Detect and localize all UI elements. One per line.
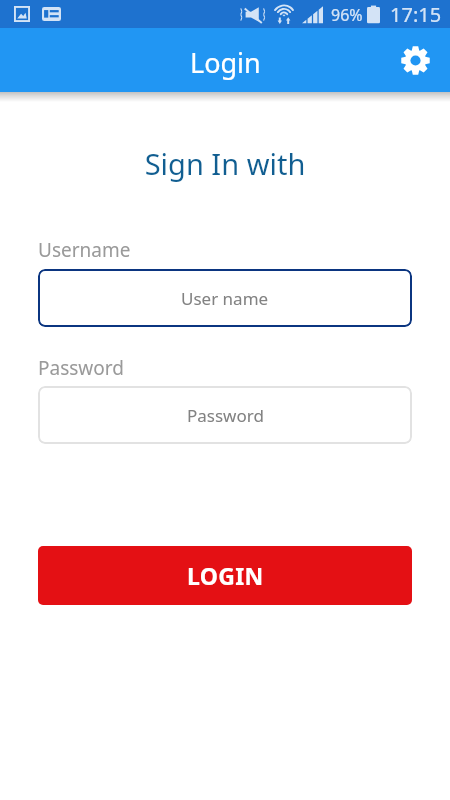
button[interactable]: Settings [392,37,438,83]
staticText: LOGIN [187,560,264,591]
button[interactable]: LOGIN [38,546,412,605]
staticText: Sign In with [0,144,450,183]
staticText: 96% [331,4,363,26]
staticText: User name [181,287,269,310]
staticText: 17:15 [390,1,442,28]
staticText: Password [187,404,264,427]
staticText: Login [190,44,261,81]
button[interactable]: Password [38,386,412,444]
staticText: Password [38,355,124,381]
button[interactable]: User name [38,269,412,327]
staticText: Username [38,237,131,263]
